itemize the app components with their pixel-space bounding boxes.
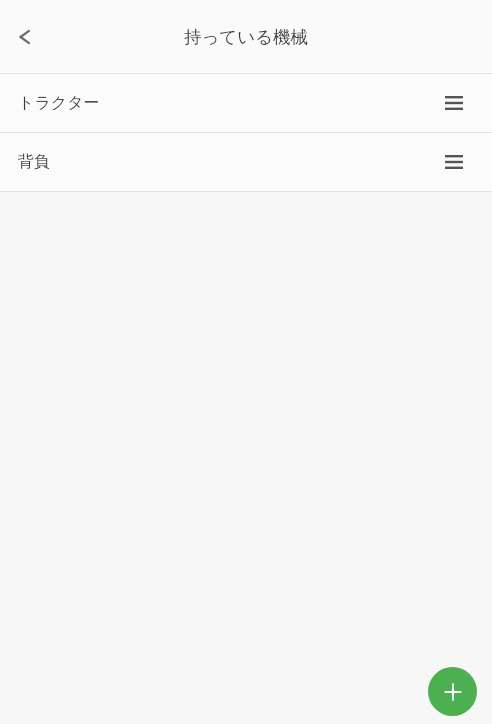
button[interactable]: Reorder トラクター <box>439 88 469 118</box>
staticText: トラクター <box>18 93 100 113</box>
button[interactable]: 背負 <box>0 133 492 191</box>
staticText: 背負 <box>18 152 50 172</box>
staticText: 持っている機械 <box>0 26 492 48</box>
button[interactable]: Add machine <box>428 667 477 716</box>
button[interactable]: トラクター <box>0 74 492 132</box>
button[interactable]: Reorder 背負 <box>439 147 469 177</box>
button[interactable]: Back <box>4 16 46 58</box>
